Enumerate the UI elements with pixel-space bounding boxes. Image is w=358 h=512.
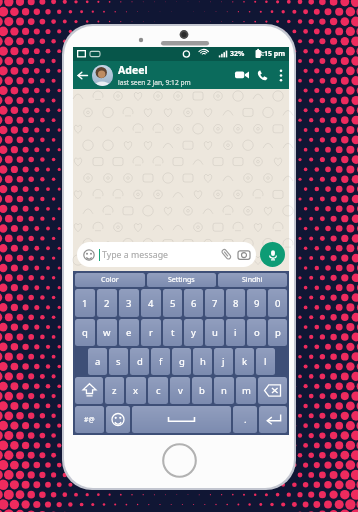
button[interactable]: b	[192, 377, 212, 404]
button[interactable]: Color	[75, 273, 145, 287]
button[interactable]: 4	[141, 289, 161, 317]
staticText: u	[212, 326, 218, 339]
button[interactable]: i	[226, 319, 245, 346]
staticText: y	[191, 326, 196, 339]
staticText: 3:15 pm	[258, 49, 286, 59]
staticText: o	[254, 326, 260, 339]
button[interactable]: n	[214, 377, 234, 404]
staticText: g	[179, 355, 185, 368]
button[interactable]: #@	[75, 406, 104, 433]
staticText: d	[137, 355, 143, 368]
button[interactable]: Attach	[220, 248, 233, 261]
button[interactable]: Enter	[259, 406, 287, 433]
staticText: h	[200, 355, 206, 368]
staticText: s	[116, 355, 121, 368]
button[interactable]: 2	[97, 289, 117, 317]
button[interactable]: s	[109, 348, 128, 375]
button[interactable]: h	[193, 348, 212, 375]
button[interactable]: y	[184, 319, 203, 346]
staticText: Settings	[168, 275, 195, 285]
button[interactable]: o	[247, 319, 266, 346]
staticText: r	[149, 326, 153, 339]
staticText: 1	[82, 297, 88, 310]
button[interactable]: Back	[73, 61, 92, 89]
button[interactable]: z	[105, 377, 124, 404]
button[interactable]: f	[151, 348, 170, 375]
staticText: Color	[101, 275, 119, 285]
button[interactable]: Camera	[238, 249, 250, 261]
button[interactable]: 5	[163, 289, 182, 317]
button[interactable]: d	[130, 348, 149, 375]
button[interactable]: 3	[119, 289, 139, 317]
staticText: Sindhi	[242, 275, 263, 285]
staticText: 5	[170, 297, 176, 310]
staticText: 7	[212, 297, 218, 310]
button[interactable]: k	[235, 348, 254, 375]
button[interactable]: 8	[226, 289, 245, 317]
button[interactable]: Backspace	[258, 377, 287, 404]
staticText: 2	[104, 297, 110, 310]
button[interactable]: 0	[268, 289, 287, 317]
button[interactable]: Video call	[231, 61, 252, 89]
staticText: 6	[191, 297, 197, 310]
button[interactable]: More options	[273, 61, 289, 89]
button[interactable]: q	[75, 319, 95, 346]
button[interactable]: Adeel	[118, 61, 231, 89]
button[interactable]: j	[214, 348, 233, 375]
button[interactable]: w	[97, 319, 117, 346]
button[interactable]: e	[119, 319, 139, 346]
staticText: v	[178, 384, 183, 397]
staticText: p	[275, 326, 281, 339]
button[interactable]: Settings	[147, 273, 216, 287]
button[interactable]: 6	[184, 289, 203, 317]
button[interactable]: m	[236, 377, 256, 404]
button[interactable]: r	[141, 319, 161, 346]
staticText: t	[171, 326, 175, 339]
button[interactable]: Type a message	[77, 242, 256, 267]
staticText: e	[126, 326, 132, 339]
button[interactable]: 9	[247, 289, 266, 317]
staticText: last seen 2 Jan, 9:12 pm	[118, 78, 191, 87]
staticText: 3	[126, 297, 132, 310]
staticText: .	[244, 413, 247, 426]
staticText: 32%	[230, 49, 245, 59]
button[interactable]: Shift	[75, 377, 103, 404]
staticText: 8	[233, 297, 239, 310]
button[interactable]: c	[148, 377, 168, 404]
staticText: i	[234, 326, 237, 339]
staticText: f	[159, 355, 163, 368]
button[interactable]: Record voice message	[260, 242, 285, 267]
staticText: j	[222, 355, 225, 368]
button[interactable]: v	[170, 377, 190, 404]
button[interactable]: u	[205, 319, 224, 346]
button[interactable]: x	[126, 377, 146, 404]
button[interactable]: 1	[75, 289, 95, 317]
button[interactable]: Emoji	[106, 406, 130, 433]
button[interactable]: Call	[252, 61, 273, 89]
button[interactable]: p	[268, 319, 287, 346]
staticText: Adeel	[118, 63, 148, 77]
staticText: #@	[84, 415, 95, 424]
button[interactable]: .	[233, 406, 257, 433]
staticText: q	[82, 326, 88, 339]
staticText: x	[133, 384, 139, 397]
button[interactable]: g	[172, 348, 191, 375]
staticText: z	[112, 384, 117, 397]
staticText: n	[221, 384, 227, 397]
staticText: 4	[148, 297, 154, 310]
staticText: c	[156, 384, 161, 397]
button[interactable]	[92, 65, 113, 86]
staticText: w	[103, 326, 111, 339]
button[interactable]: Sindhi	[218, 273, 287, 287]
staticText: 9	[254, 297, 260, 310]
staticText: b	[199, 384, 205, 397]
button[interactable]: a	[88, 348, 107, 375]
button[interactable]: 7	[205, 289, 224, 317]
staticText: l	[264, 355, 267, 368]
staticText: Type a message	[102, 249, 220, 261]
button[interactable]: t	[163, 319, 182, 346]
staticText: 0	[275, 297, 281, 310]
staticText: m	[242, 384, 251, 397]
button[interactable]: l	[256, 348, 275, 375]
button[interactable]: Space	[132, 406, 231, 433]
